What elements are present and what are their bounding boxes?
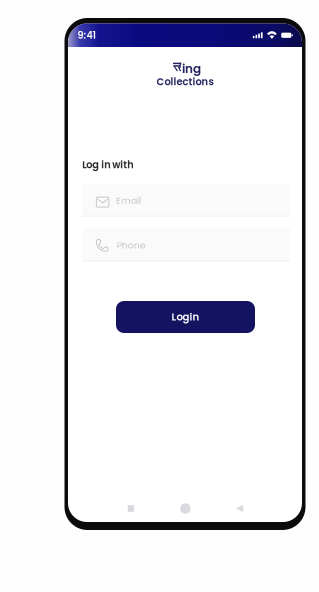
button[interactable]: Phone <box>82 228 290 261</box>
staticText: Log in with <box>82 158 133 172</box>
staticText: Login <box>171 310 199 324</box>
staticText: ing <box>182 60 201 77</box>
button[interactable]: Home <box>165 496 205 520</box>
staticText: Collections <box>156 75 213 89</box>
button[interactable]: Recents <box>111 496 151 520</box>
staticText: Phone <box>117 239 146 252</box>
button[interactable]: Back <box>220 496 260 520</box>
button[interactable]: Email <box>82 184 290 217</box>
staticText: Email <box>116 194 141 207</box>
staticText: 9:41 <box>77 29 95 42</box>
button[interactable]: Login <box>116 301 255 333</box>
